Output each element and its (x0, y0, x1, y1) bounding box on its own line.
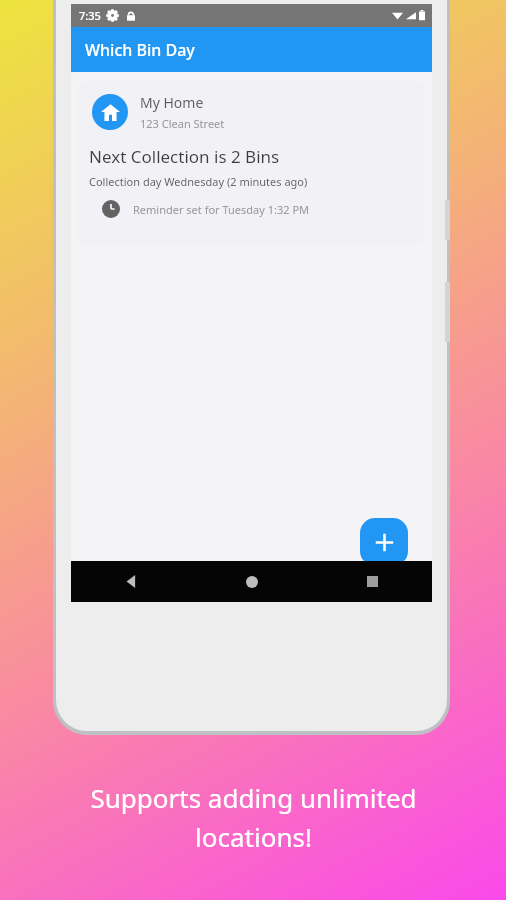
staticText: Which Bin Day (85, 39, 195, 61)
staticText: locations! (195, 819, 312, 854)
button[interactable]: Add location (360, 518, 408, 566)
button[interactable]: Home (192, 561, 312, 602)
button[interactable]: Recent apps (312, 561, 432, 602)
button[interactable]: My Home (78, 81, 425, 246)
staticText: 7:35 (79, 8, 101, 23)
staticText: Next Collection is 2 Bins (89, 145, 280, 168)
button[interactable]: Back (71, 561, 192, 602)
staticText: 123 Clean Street (140, 116, 225, 131)
staticText: Supports adding unlimited (90, 780, 417, 815)
staticText: My Home (140, 93, 204, 112)
staticText: Reminder set for Tuesday 1:32 PM (133, 202, 310, 217)
staticText: Collection day Wednesday (2 minutes ago) (89, 174, 308, 189)
